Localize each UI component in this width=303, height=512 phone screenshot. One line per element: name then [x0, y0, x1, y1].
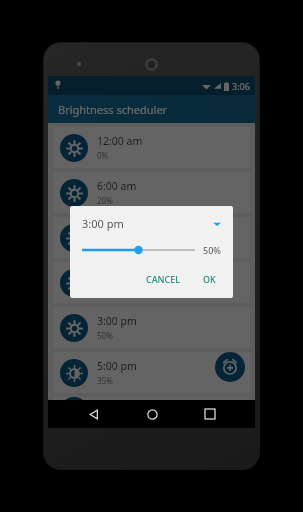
button[interactable]: [82, 243, 195, 257]
staticText: 25%: [97, 413, 113, 424]
button[interactable]: 3:00 pm: [82, 216, 221, 231]
staticText: 3:00 pm: [97, 314, 137, 328]
button[interactable]: 12:00 pm: [53, 262, 250, 303]
staticText: 6:00 pm: [97, 397, 137, 411]
staticText: 3:00 pm: [82, 216, 124, 231]
button[interactable]: 3:00 pm: [53, 307, 250, 348]
button[interactable]: 6:00 am: [53, 172, 250, 213]
staticText: OK: [203, 273, 216, 285]
button[interactable]: 12:00 am: [53, 127, 250, 168]
staticText: 35%: [97, 375, 113, 386]
staticText: 6:00 am: [97, 179, 137, 193]
staticText: 0%: [97, 150, 109, 161]
staticText: 50%: [203, 244, 221, 256]
button[interactable]: OK: [196, 269, 223, 289]
staticText: 5:00 pm: [97, 359, 137, 373]
other: Dropdown: [213, 220, 221, 228]
button[interactable]: 6:00 pm: [53, 397, 250, 424]
button[interactable]: 9:00 am: [53, 217, 250, 258]
staticText: 3:06: [232, 80, 250, 92]
button[interactable]: Recent apps: [196, 400, 224, 428]
button[interactable]: 5:00 pm: [53, 352, 250, 393]
staticText: 20%: [97, 195, 113, 206]
button[interactable]: Brightness scheduler: [48, 95, 255, 123]
staticText: 50%: [97, 330, 113, 341]
button[interactable]: Home: [138, 400, 166, 428]
staticText: Brightness scheduler: [58, 102, 168, 117]
staticText: 9:00 am: [97, 224, 137, 238]
button[interactable]: Add schedule: [215, 352, 245, 382]
staticText: CANCEL: [146, 273, 181, 285]
button[interactable]: CANCEL: [139, 269, 188, 289]
staticText: 40%: [97, 240, 113, 251]
staticText: 12:00 am: [97, 134, 143, 148]
button[interactable]: Back: [79, 400, 107, 428]
